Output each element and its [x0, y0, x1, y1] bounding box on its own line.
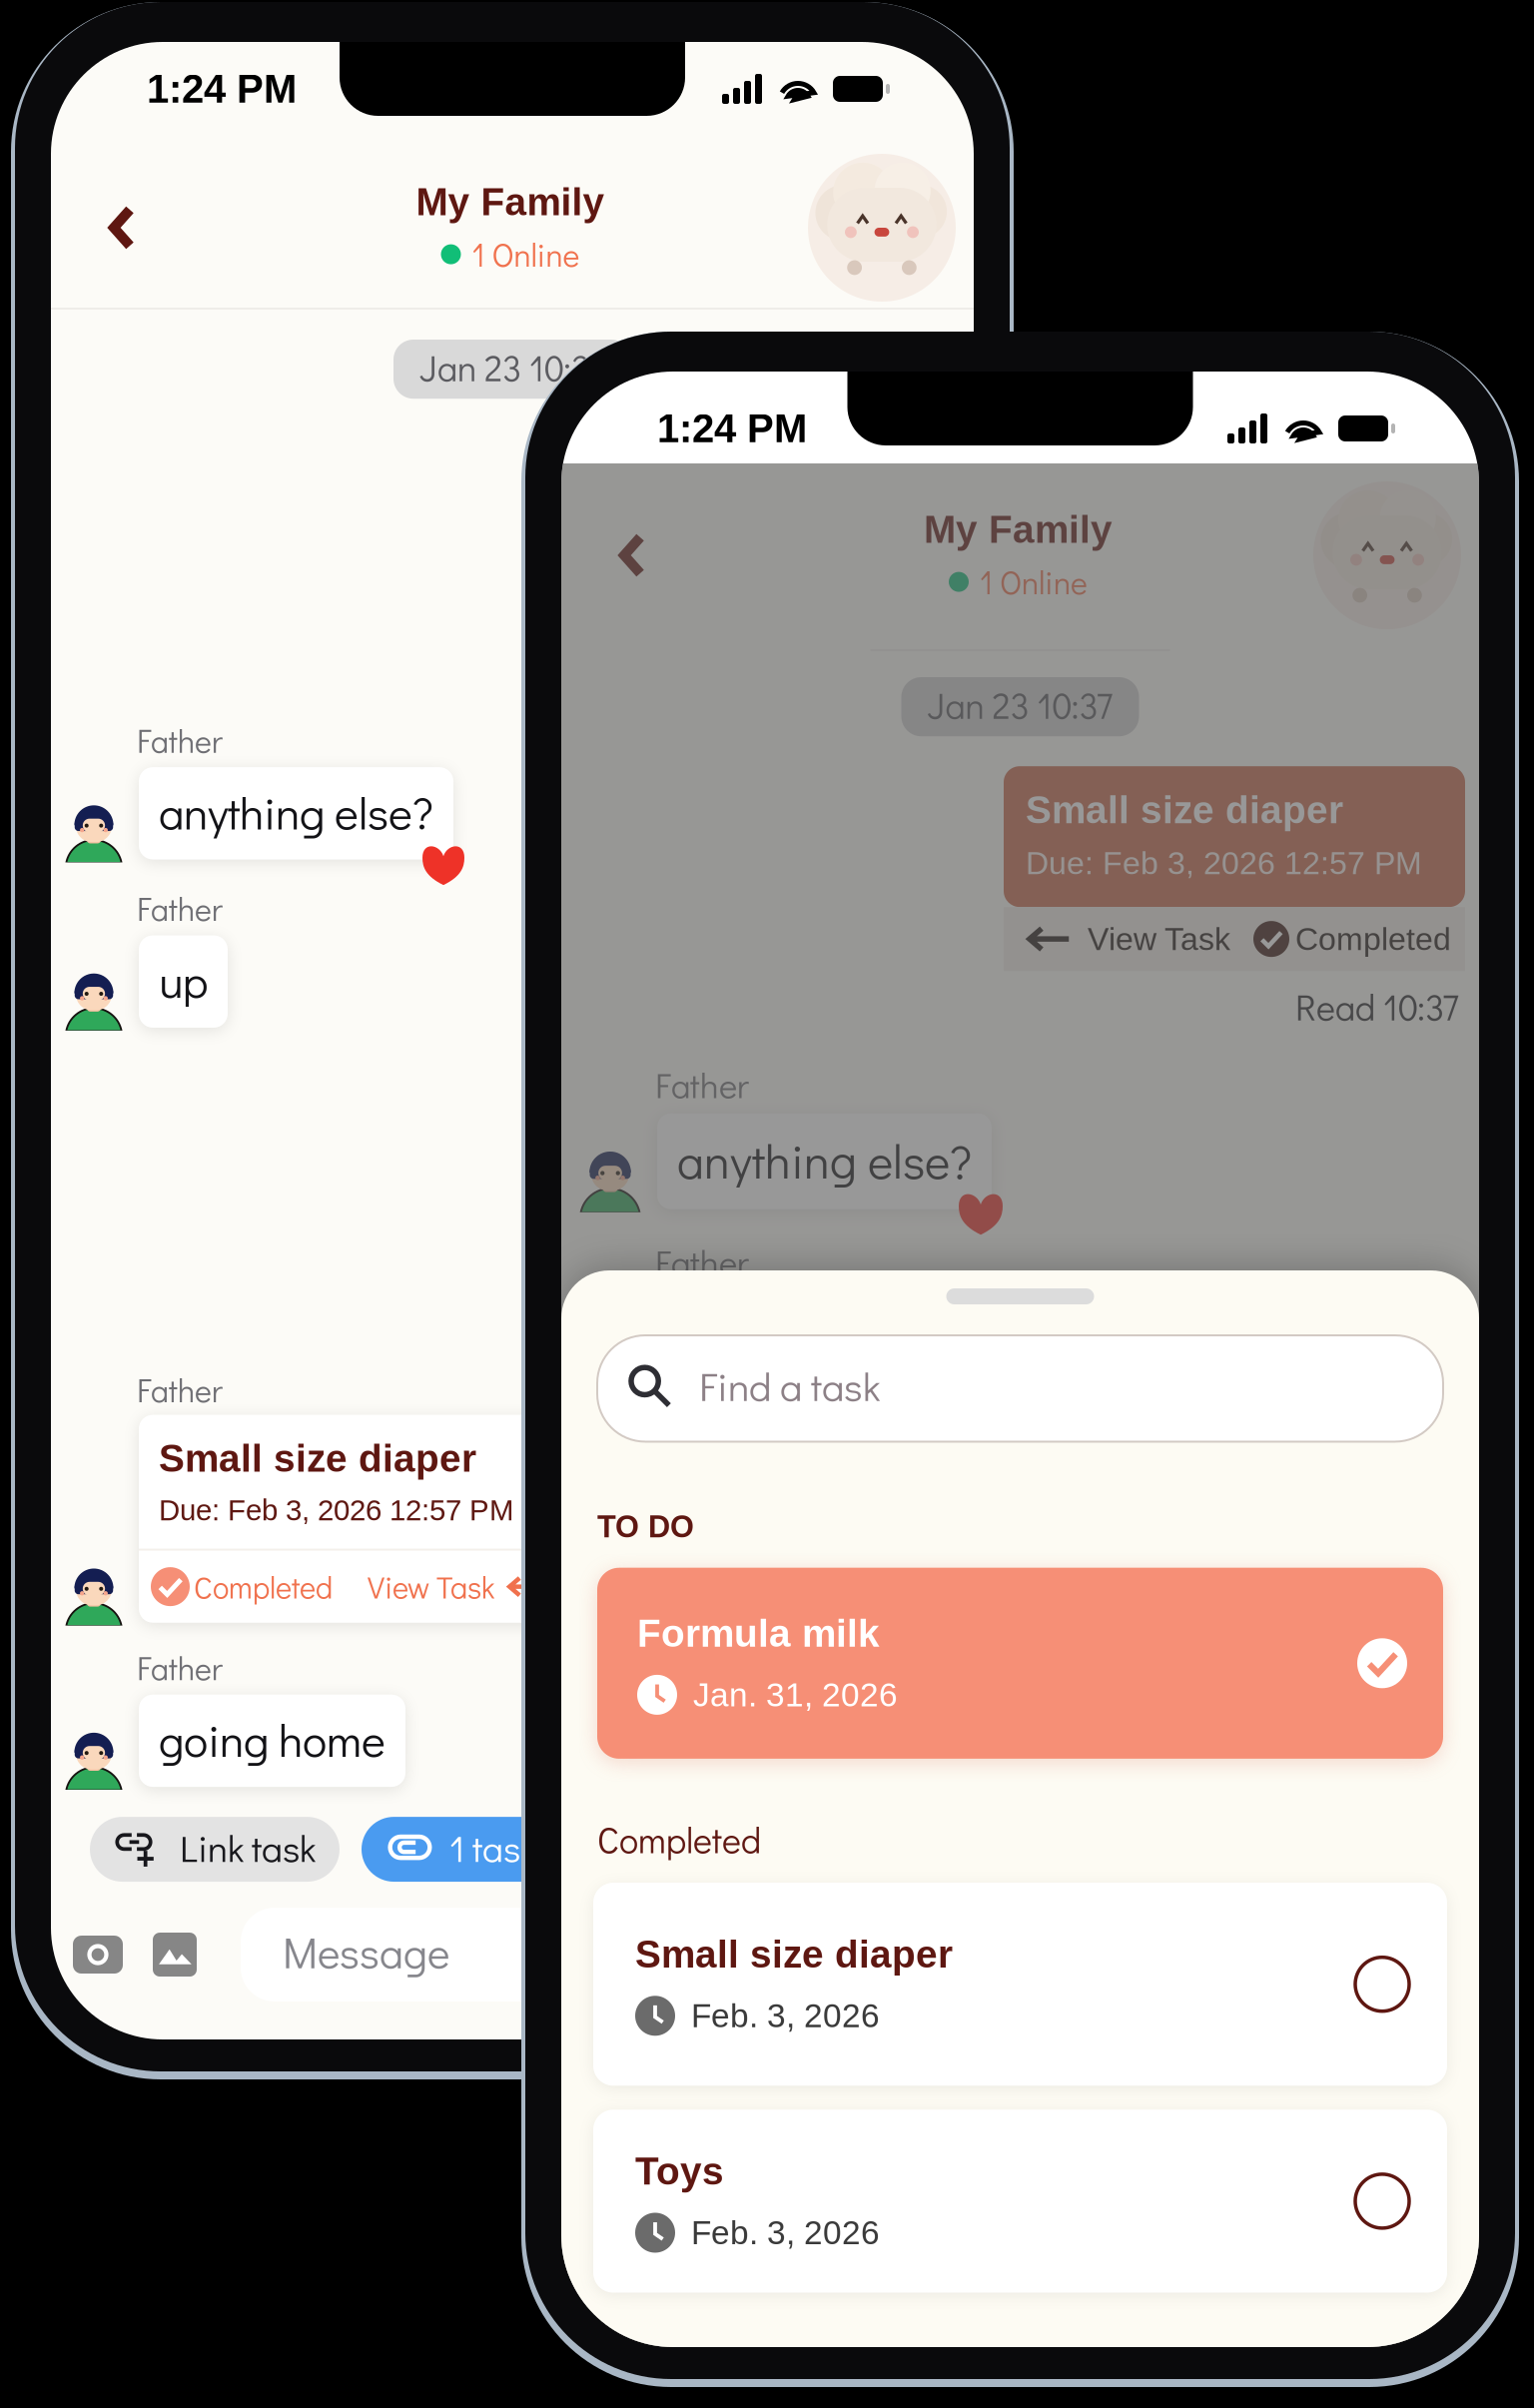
- staticText: View Task: [1088, 921, 1230, 957]
- staticText: Completed: [597, 1816, 761, 1863]
- staticText: Feb. 3, 2026: [691, 1997, 880, 2034]
- staticText: Small size diaper: [635, 1933, 953, 1976]
- staticText: Due: Feb 3, 2026 12:57 PM: [1026, 845, 1422, 881]
- button[interactable]: Completed: [151, 1567, 333, 1607]
- staticText: My Family: [416, 180, 605, 223]
- staticText: View Task: [368, 1567, 494, 1607]
- staticText: Find a task: [699, 1359, 880, 1412]
- staticText: Toys: [635, 2150, 724, 2193]
- staticText: Jan 23 10:37: [927, 681, 1113, 728]
- staticText: up: [159, 950, 208, 1010]
- staticText: Link task: [180, 1823, 316, 1872]
- staticText: 1 Online: [472, 233, 580, 275]
- staticText: My Family: [924, 508, 1113, 551]
- staticText: TO DO: [597, 1510, 694, 1544]
- button[interactable]: Back: [575, 510, 671, 600]
- staticText: Father: [137, 1369, 223, 1411]
- staticText: Father: [137, 1647, 223, 1689]
- staticText: Completed: [194, 1567, 333, 1607]
- staticText: Jan 23 10:37: [419, 344, 605, 391]
- staticText: Message: [283, 1924, 449, 1980]
- staticText: Read 10:37: [1295, 983, 1459, 1030]
- button[interactable]: Small size diaper: [593, 1883, 1447, 2086]
- staticText: Father: [655, 1239, 749, 1284]
- staticText: 1:24 PM: [657, 406, 807, 451]
- button[interactable]: Link task: [90, 1817, 340, 1882]
- staticText: 1 task: [449, 1823, 536, 1872]
- staticText: Father: [137, 887, 223, 929]
- staticText: Feb. 3, 2026: [691, 2214, 880, 2251]
- staticText: Jan. 31, 2026: [693, 1676, 898, 1713]
- button[interactable]: 1 task: [362, 1817, 566, 1882]
- button[interactable]: View Task: [368, 1567, 544, 1607]
- button[interactable]: Photos: [153, 1933, 197, 1977]
- staticText: Small size diaper: [1026, 788, 1343, 831]
- staticText: Completed: [1295, 921, 1451, 957]
- staticText: anything else?: [159, 782, 433, 841]
- staticText: Small size diaper: [159, 1437, 476, 1480]
- button[interactable]: Back: [65, 183, 161, 273]
- staticText: Formula milk: [637, 1612, 880, 1655]
- button[interactable]: View Task: [1026, 921, 1230, 957]
- button[interactable]: Completed: [1253, 921, 1451, 957]
- staticText: 1 Online: [980, 561, 1088, 603]
- staticText: going home: [159, 1710, 385, 1769]
- button[interactable]: Toys: [593, 2110, 1447, 2293]
- staticText: Due: Feb 3, 2026 12:57 PM: [159, 1494, 513, 1527]
- button[interactable]: Group avatar: [808, 154, 956, 302]
- staticText: Father: [137, 719, 223, 761]
- button[interactable]: Group avatar: [1313, 481, 1461, 629]
- button[interactable]: Camera: [73, 1936, 123, 1974]
- staticText: anything else?: [677, 1128, 972, 1191]
- staticText: 1:24 PM: [147, 67, 297, 111]
- staticText: Father: [655, 1062, 749, 1107]
